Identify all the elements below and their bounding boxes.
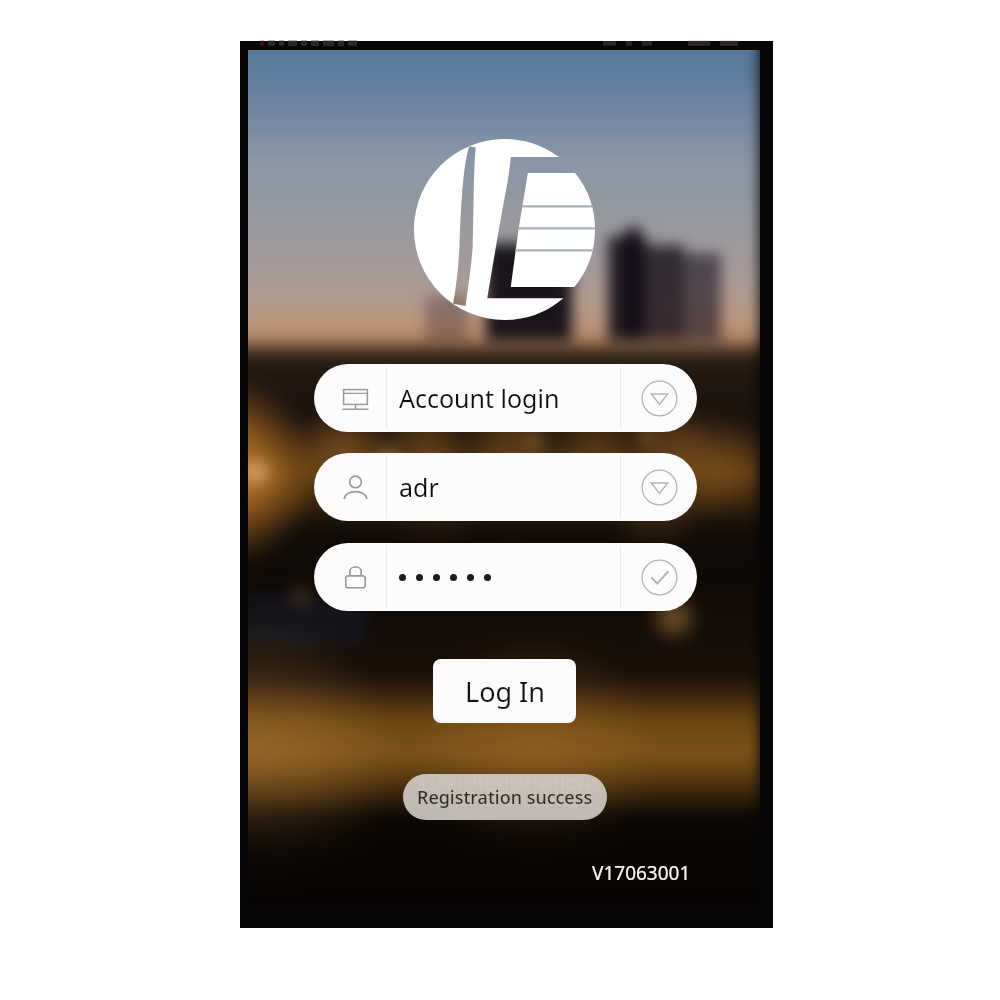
staticText: Log In [465,673,545,710]
staticText: adr [399,470,439,504]
staticText: Registration success [417,785,593,810]
staticText: Account login [399,381,560,415]
button[interactable]: Password [314,543,697,611]
staticText: V17063001 [592,860,691,886]
button[interactable]: Username [314,453,697,521]
staticText: User Registration [420,768,591,797]
button[interactable]: Log In [433,659,576,723]
button[interactable]: Account login [314,364,697,432]
